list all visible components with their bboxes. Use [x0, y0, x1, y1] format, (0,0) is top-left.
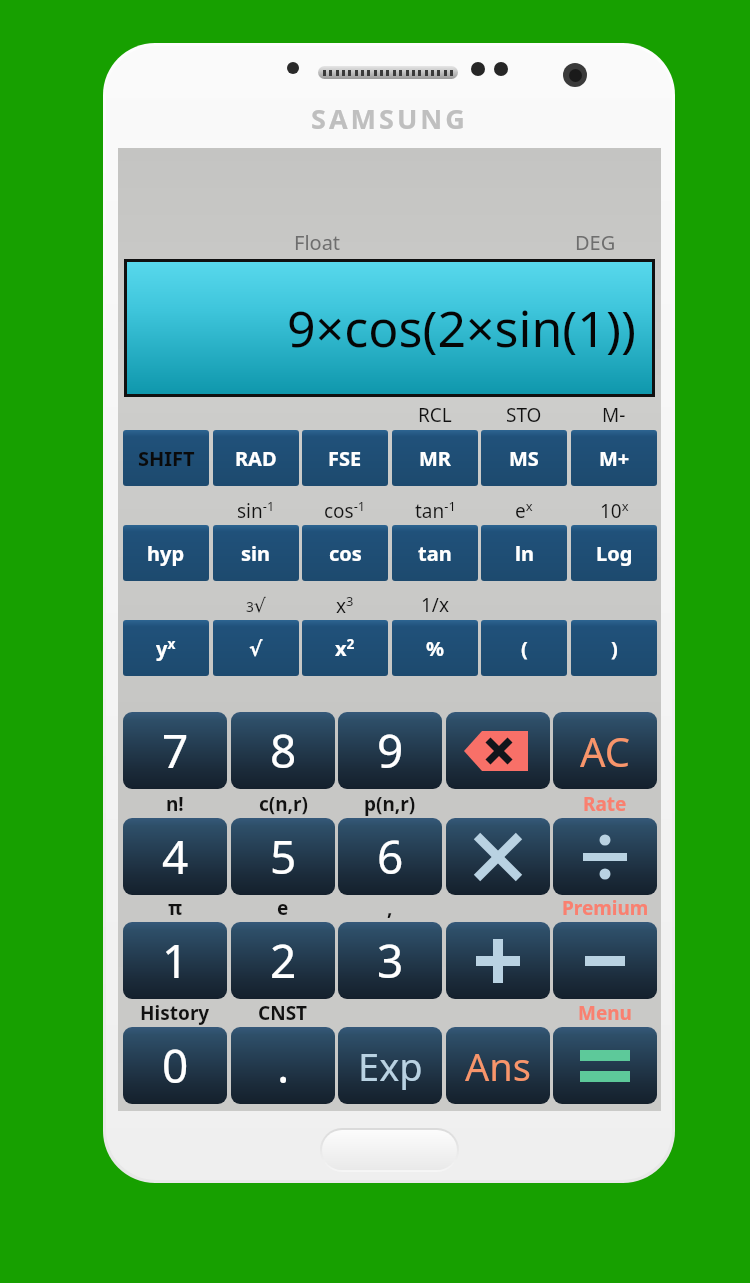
button[interactable]: hyp: [123, 525, 209, 581]
staticText: 2: [270, 929, 297, 992]
staticText: STO: [506, 402, 542, 428]
button[interactable]: MS: [481, 430, 567, 486]
staticText: M+: [599, 445, 630, 472]
staticText: History: [140, 1000, 210, 1025]
button[interactable]: TIMES: [446, 818, 550, 895]
staticText: cos: [329, 540, 362, 567]
staticText: tan-1: [415, 497, 456, 523]
staticText: 8: [270, 719, 297, 782]
button[interactable]: FSE: [302, 430, 388, 486]
button[interactable]: cos: [302, 525, 388, 581]
staticText: p(n,r): [364, 791, 416, 816]
button[interactable]: x2: [302, 620, 388, 676]
button[interactable]: EQUALS: [553, 1027, 657, 1104]
button[interactable]: yx: [123, 620, 209, 676]
staticText: Exp: [358, 1040, 423, 1092]
button[interactable]: tan: [392, 525, 478, 581]
staticText: CNST: [258, 1000, 308, 1025]
button[interactable]: 9×cos(2×sin(1)): [127, 262, 652, 394]
staticText: hyp: [147, 540, 185, 567]
staticText: 1: [162, 929, 189, 992]
staticText: SAMSUNG: [311, 100, 468, 136]
staticText: RAD: [235, 445, 277, 472]
staticText: 9: [377, 719, 404, 782]
button[interactable]: M+: [571, 430, 657, 486]
staticText: Menu: [578, 1000, 632, 1025]
staticText: ,: [387, 895, 393, 920]
staticText: MR: [419, 445, 451, 472]
button[interactable]: sin: [213, 525, 299, 581]
staticText: 6: [377, 825, 404, 888]
staticText: 9×cos(2×sin(1)): [287, 294, 636, 362]
button[interactable]: MR: [392, 430, 478, 486]
staticText: ): [611, 635, 618, 662]
staticText: M-: [602, 402, 626, 428]
staticText: n!: [166, 791, 184, 816]
button[interactable]: 3: [338, 922, 442, 999]
staticText: 3: [377, 929, 404, 992]
staticText: 5: [270, 825, 297, 888]
staticText: e: [277, 895, 289, 920]
staticText: FSE: [328, 445, 362, 472]
button[interactable]: SHIFT: [123, 430, 209, 486]
button[interactable]: 5: [231, 818, 335, 895]
button[interactable]: Ans: [446, 1027, 550, 1104]
staticText: tan: [418, 540, 452, 567]
staticText: cos-1: [324, 497, 366, 523]
button[interactable]: DIVIDE: [553, 818, 657, 895]
staticText: 10x: [600, 497, 629, 523]
staticText: Rate: [583, 791, 627, 816]
staticText: Float: [294, 229, 341, 256]
staticText: 3√: [246, 594, 266, 616]
button[interactable]: 9: [338, 712, 442, 789]
staticText: Premium: [562, 895, 649, 920]
button[interactable]: √: [213, 620, 299, 676]
staticText: sin-1: [237, 497, 275, 523]
button[interactable]: %: [392, 620, 478, 676]
button[interactable]: BACKSPACE: [446, 712, 550, 789]
staticText: x2: [335, 634, 355, 662]
button[interactable]: Home: [320, 1128, 459, 1172]
button[interactable]: RAD: [213, 430, 299, 486]
staticText: ln: [515, 540, 534, 567]
button[interactable]: ): [571, 620, 657, 676]
button[interactable]: PLUS: [446, 922, 550, 999]
staticText: 4: [162, 825, 189, 888]
staticText: SHIFT: [138, 445, 195, 472]
button[interactable]: ln: [481, 525, 567, 581]
staticText: 0: [162, 1034, 189, 1097]
button[interactable]: (: [481, 620, 567, 676]
staticText: ex: [515, 497, 533, 523]
staticText: 7: [162, 719, 189, 782]
button[interactable]: Log: [571, 525, 657, 581]
button[interactable]: 8: [231, 712, 335, 789]
button[interactable]: 0: [123, 1027, 227, 1104]
button[interactable]: .: [231, 1027, 335, 1104]
button[interactable]: 1: [123, 922, 227, 999]
staticText: (: [521, 635, 528, 662]
staticText: x3: [336, 592, 354, 618]
staticText: √: [249, 637, 263, 660]
button[interactable]: 2: [231, 922, 335, 999]
staticText: %: [426, 635, 445, 662]
button[interactable]: 7: [123, 712, 227, 789]
staticText: AC: [580, 724, 631, 778]
staticText: DEG: [575, 229, 616, 256]
button[interactable]: 4: [123, 818, 227, 895]
button[interactable]: Exp: [338, 1027, 442, 1104]
button[interactable]: 6: [338, 818, 442, 895]
staticText: Ans: [465, 1040, 531, 1092]
staticText: .: [277, 1034, 290, 1097]
staticText: yx: [156, 634, 176, 662]
button[interactable]: MINUS: [553, 922, 657, 999]
staticText: sin: [241, 540, 271, 567]
staticText: π: [168, 895, 183, 920]
staticText: RCL: [418, 402, 452, 428]
staticText: 1/x: [421, 592, 449, 618]
staticText: MS: [509, 445, 539, 472]
staticText: c(n,r): [259, 791, 308, 816]
staticText: Log: [596, 540, 633, 567]
button[interactable]: AC: [553, 712, 657, 789]
